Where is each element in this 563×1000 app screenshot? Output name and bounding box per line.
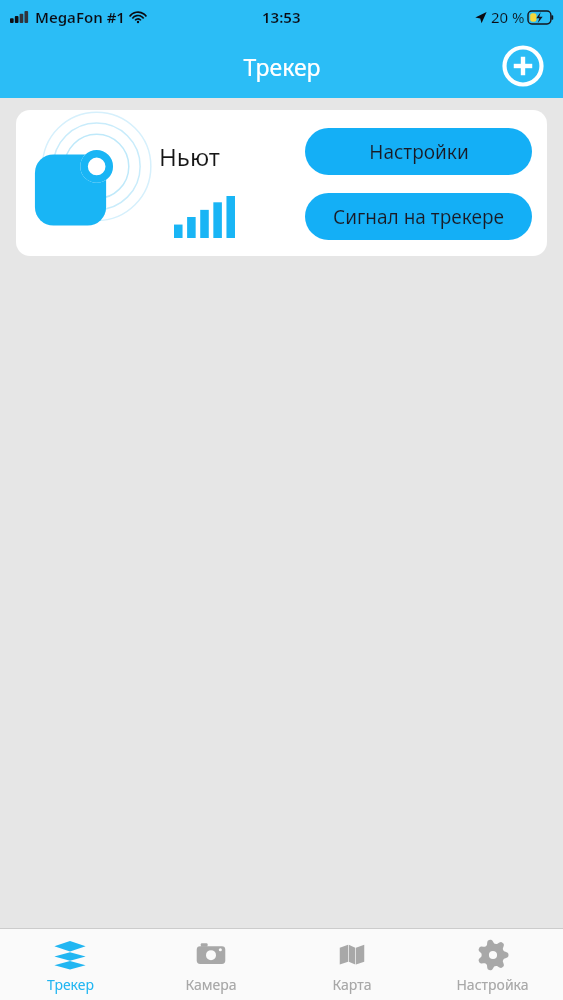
staticText: Камера (185, 975, 237, 994)
staticText: Карта (332, 975, 372, 994)
staticText: Настройки (369, 139, 469, 165)
staticText: Настройка (456, 975, 529, 994)
button[interactable]: Ньют (16, 110, 547, 256)
staticText: Ньют (159, 140, 221, 173)
button[interactable]: Настройка (422, 930, 563, 1000)
staticText: 13:53 (262, 7, 301, 27)
staticText: 20 % (491, 7, 525, 27)
staticText: Сигнал на трекере (333, 204, 504, 230)
button[interactable]: Добавить трекер (501, 44, 545, 88)
staticText: Трекер (243, 51, 321, 82)
staticText: Трекер (47, 975, 94, 994)
button[interactable]: Камера (140, 930, 281, 1000)
button[interactable]: Сигнал на трекере (305, 193, 532, 240)
button[interactable]: Настройки (305, 128, 532, 175)
button[interactable]: Карта (281, 930, 422, 1000)
button[interactable]: Трекер (0, 930, 140, 1000)
staticText: MegaFon #1 (35, 7, 125, 27)
